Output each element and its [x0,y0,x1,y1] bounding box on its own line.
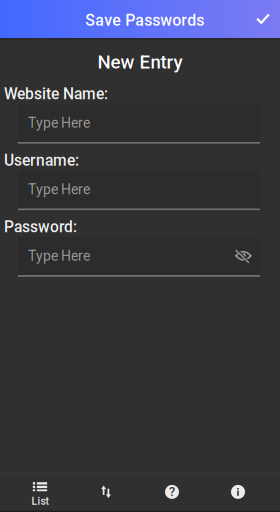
staticText: Type Here [28,181,90,198]
button[interactable]: Help [139,474,205,510]
button[interactable]: List [7,474,73,510]
button[interactable]: Sort [73,474,139,510]
staticText: ? [169,484,175,499]
staticText: Save Passwords [85,11,204,30]
button[interactable]: Info [205,474,271,510]
staticText: Type Here [28,115,90,131]
staticText: List [31,495,48,507]
staticText: Website Name: [4,85,108,103]
staticText: New Entry [97,51,182,73]
button[interactable]: Save [246,0,280,38]
staticText: Username: [4,151,79,170]
staticText: Password: [4,218,77,236]
staticText: Type Here [28,248,90,264]
